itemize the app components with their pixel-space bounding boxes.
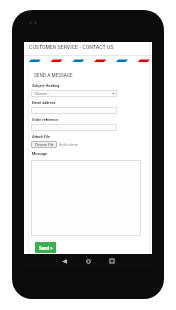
staticText: Subject Heading (32, 83, 60, 88)
button[interactable] (31, 124, 117, 131)
button[interactable]: Back (57, 254, 71, 268)
button[interactable]: Recent apps (105, 254, 119, 268)
staticText: Choose File (35, 142, 54, 147)
button[interactable] (31, 160, 141, 236)
button[interactable]: Choose File (31, 141, 79, 148)
button[interactable]: Home (81, 254, 95, 268)
staticText: Message (32, 151, 48, 156)
staticText: - Choose - (33, 91, 49, 96)
staticText: Order reference (32, 117, 59, 122)
button[interactable] (31, 107, 117, 114)
staticText: CUSTOMER SERVICE - CONTACT US (29, 43, 114, 50)
staticText: Send > (39, 245, 53, 251)
staticText: Email address (32, 100, 56, 105)
button[interactable]: Send > (35, 242, 56, 253)
staticText: Attach File (32, 134, 51, 139)
staticText: No file chosen (59, 143, 79, 147)
button[interactable]: - Choose - (31, 90, 117, 97)
staticText: SEND A MESSAGE (34, 72, 73, 78)
